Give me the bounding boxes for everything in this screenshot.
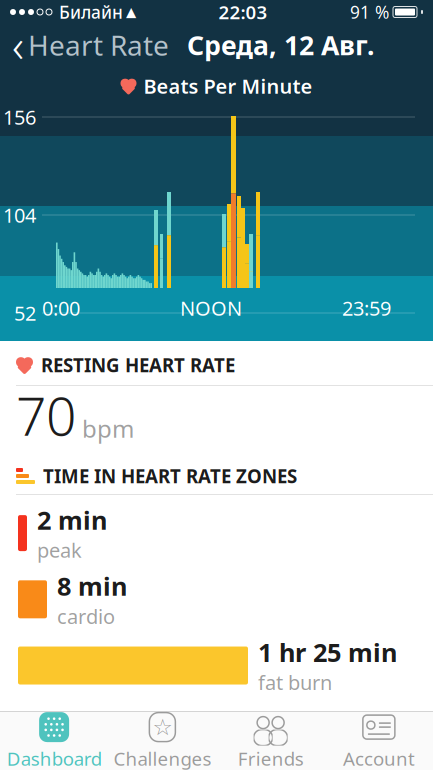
staticText: 1 hr 25 min: [258, 635, 397, 669]
staticText: 91 %: [350, 0, 389, 23]
staticText: Dashboard: [7, 746, 102, 770]
staticText: Beats Per Minute: [143, 73, 312, 99]
staticText: Friends: [238, 746, 304, 770]
staticText: ▲: [126, 4, 136, 19]
staticText: Challenges: [113, 746, 211, 770]
button[interactable]: Friends: [216, 712, 325, 770]
staticText: 52: [14, 300, 36, 326]
staticText: 2 min: [37, 503, 107, 537]
button[interactable]: Dashboard: [0, 712, 108, 770]
staticText: ‹: [12, 15, 24, 75]
staticText: cardio: [57, 603, 115, 629]
staticText: Heart Rate: [28, 26, 169, 64]
staticText: Билайн: [59, 0, 123, 23]
staticText: TIME IN HEART RATE ZONES: [43, 464, 297, 488]
staticText: bpm: [82, 412, 134, 444]
staticText: 22:03: [218, 0, 267, 24]
button[interactable]: ☆: [108, 712, 216, 770]
staticText: ☆: [152, 714, 172, 740]
staticText: 70: [16, 380, 76, 450]
staticText: RESTING HEART RATE: [41, 353, 235, 377]
staticText: NOON: [180, 295, 242, 321]
staticText: 0:00: [42, 295, 80, 321]
staticText: 23:59: [342, 295, 391, 321]
staticText: fat burn: [258, 669, 332, 696]
staticText: peak: [37, 537, 82, 563]
staticText: 156: [3, 104, 36, 130]
staticText: Среда, 12 Авг.: [187, 27, 374, 63]
staticText: 8 min: [57, 569, 127, 603]
button[interactable]: ‹: [0, 24, 175, 66]
staticText: 104: [3, 202, 36, 228]
button[interactable]: Account: [325, 712, 433, 770]
staticText: Account: [343, 746, 415, 770]
